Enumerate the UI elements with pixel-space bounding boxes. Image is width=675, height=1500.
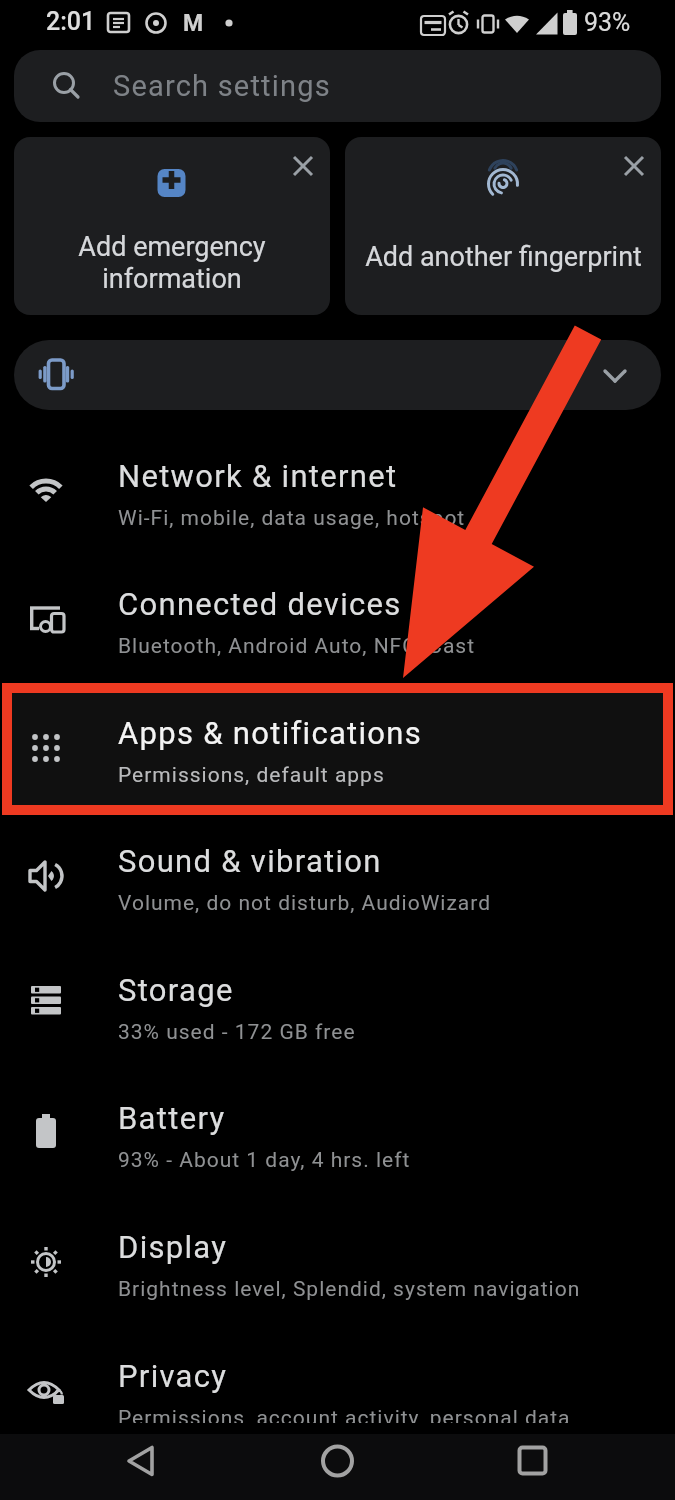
staticText: Add emergency — [78, 231, 266, 263]
staticText: 93% - About 1 day, 4 hrs. left — [118, 1148, 411, 1173]
staticText: M — [183, 10, 204, 37]
staticText: Battery — [118, 1100, 226, 1136]
button[interactable]: Apps & notifications — [0, 689, 675, 817]
button[interactable]: Add emergency — [14, 137, 330, 315]
staticText: Permissions, account activity, personal … — [118, 1406, 571, 1431]
staticText: 33% used - 172 GB free — [118, 1020, 356, 1045]
button[interactable]: Search settings — [14, 50, 661, 122]
button[interactable] — [14, 340, 661, 410]
staticText: Display — [118, 1229, 228, 1265]
staticText: Network & internet — [118, 458, 398, 494]
button[interactable]: Privacy — [0, 1332, 675, 1460]
staticText: Search settings — [113, 69, 331, 103]
button[interactable]: Add another fingerprint — [345, 137, 661, 315]
button[interactable] — [450, 1434, 675, 1500]
staticText: Volume, do not disturb, AudioWizard — [118, 891, 492, 916]
button[interactable]: Sound & vibration — [0, 817, 675, 945]
staticText: Add another fingerprint — [365, 241, 642, 273]
staticText: Storage — [118, 972, 234, 1008]
staticText: 93% — [584, 8, 631, 37]
button[interactable] — [0, 1434, 225, 1500]
staticText: Apps & notifications — [118, 715, 423, 751]
staticText: Sound & vibration — [118, 843, 382, 879]
staticText: Privacy — [118, 1358, 228, 1394]
button[interactable] — [225, 1434, 450, 1500]
staticText: Connected devices — [118, 586, 402, 622]
button[interactable]: Storage — [0, 946, 675, 1074]
staticText: Wi-Fi, mobile, data usage, hotspot — [118, 506, 466, 531]
staticText: information — [102, 263, 242, 295]
staticText: Bluetooth, Android Auto, NFC, Cast — [118, 634, 476, 659]
button[interactable]: Display — [0, 1203, 675, 1331]
staticText: Permissions, default apps — [118, 763, 385, 788]
button[interactable]: Connected devices — [0, 560, 675, 688]
staticText: 2:01 — [46, 7, 96, 36]
button[interactable]: Battery — [0, 1074, 675, 1202]
staticText: Brightness level, Splendid, system navig… — [118, 1277, 581, 1302]
button[interactable]: Network & internet — [0, 432, 675, 560]
